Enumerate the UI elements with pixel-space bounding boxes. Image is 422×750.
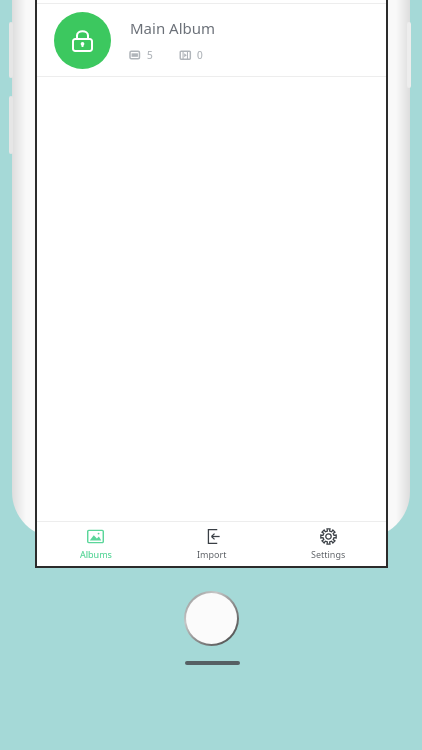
staticText: 5 [147, 48, 153, 62]
button[interactable]: Albums [37, 522, 154, 566]
staticText: Main Album [130, 18, 216, 38]
staticText: Settings [311, 548, 346, 560]
staticText: Import [197, 548, 227, 560]
button[interactable]: Import [154, 522, 270, 566]
button[interactable]: Main Album [37, 4, 386, 76]
staticText: Albums [80, 548, 112, 560]
staticText: 0 [197, 48, 203, 62]
button[interactable]: Settings [270, 522, 386, 566]
button[interactable]: Home [186, 593, 237, 644]
